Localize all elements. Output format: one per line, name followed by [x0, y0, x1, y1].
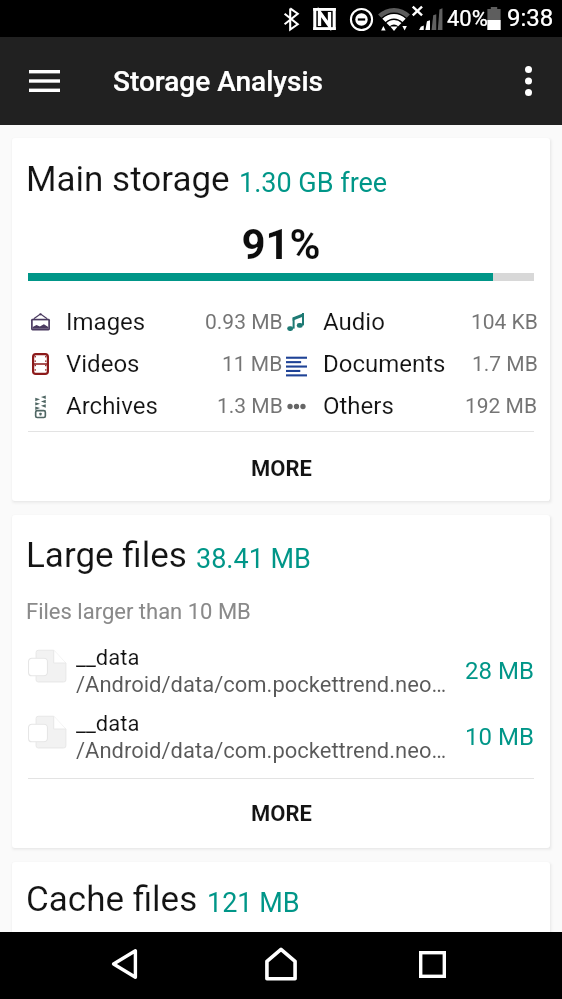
- button[interactable]: Home: [249, 932, 313, 996]
- staticText: 91%: [12, 220, 550, 269]
- staticText: Archives: [66, 392, 158, 420]
- staticText: Videos: [66, 350, 140, 378]
- staticText: Audio: [323, 308, 385, 336]
- button[interactable]: Audio: [283, 308, 538, 336]
- staticText: Storage Analysis: [113, 65, 323, 98]
- button[interactable]: Documents: [283, 350, 538, 378]
- button[interactable]: More options: [502, 55, 554, 107]
- staticText: MORE: [251, 456, 312, 482]
- staticText: /Android/data/com.pockettrend.neo…: [76, 738, 447, 764]
- staticText: 9:38: [507, 4, 554, 32]
- staticText: Cache files: [26, 879, 198, 920]
- staticText: Main storage: [26, 159, 230, 200]
- button[interactable]: Archives: [28, 392, 283, 420]
- staticText: 104 KB: [471, 310, 538, 335]
- button[interactable]: MORE: [12, 432, 550, 501]
- staticText: 0.93 MB: [205, 310, 283, 335]
- staticText: 1.30 GB free: [239, 167, 388, 199]
- staticText: Images: [66, 308, 146, 336]
- button[interactable]: Recent apps: [400, 932, 464, 996]
- button[interactable]: Open navigation drawer: [16, 53, 72, 109]
- staticText: Files larger than 10 MB: [26, 599, 251, 625]
- staticText: 11 MB: [222, 352, 283, 377]
- staticText: 1.7 MB: [472, 352, 538, 377]
- button[interactable]: Others: [283, 392, 538, 420]
- staticText: 28 MB: [465, 657, 534, 685]
- staticText: 121 MB: [207, 887, 300, 919]
- staticText: 10 MB: [465, 723, 534, 751]
- staticText: 192 MB: [465, 394, 538, 419]
- staticText: __data: [76, 645, 140, 671]
- staticText: Documents: [323, 350, 446, 378]
- staticText: 1.3 MB: [217, 394, 283, 419]
- button[interactable]: Images: [28, 308, 283, 336]
- staticText: 38.41 MB: [196, 543, 311, 575]
- button[interactable]: Videos: [28, 350, 283, 378]
- button[interactable]: __data: [26, 704, 534, 770]
- button[interactable]: MORE: [12, 779, 550, 848]
- staticText: /Android/data/com.pockettrend.neo…: [76, 672, 447, 698]
- staticText: __data: [76, 711, 140, 737]
- staticText: Large files: [26, 535, 187, 576]
- staticText: MORE: [251, 801, 312, 827]
- button[interactable]: Back: [93, 932, 157, 996]
- button[interactable]: __data: [26, 638, 534, 704]
- staticText: Others: [323, 392, 394, 420]
- staticText: 40%: [447, 6, 488, 32]
